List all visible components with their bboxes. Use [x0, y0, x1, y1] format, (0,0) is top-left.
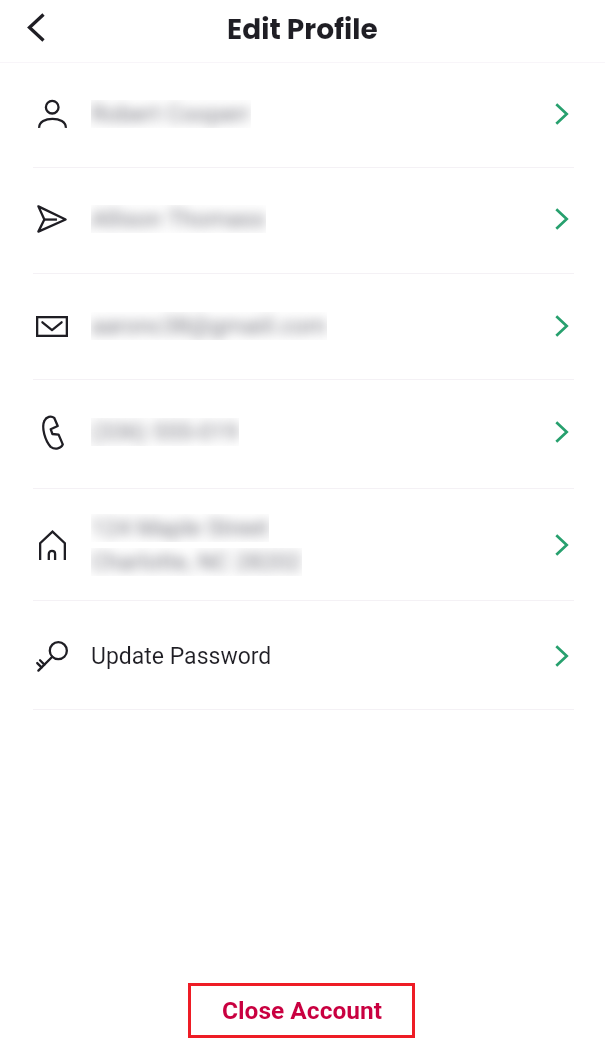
- staticText: aaronc38@gmaiil.com: [91, 312, 327, 340]
- staticText: 124 Maple Street: [91, 514, 269, 542]
- staticText: Close Account: [222, 996, 382, 1025]
- button[interactable]: Robert Cooperr: [0, 64, 605, 164]
- staticText: Robert Cooperr: [91, 100, 251, 128]
- button[interactable]: 124 Maple Street: [0, 495, 605, 595]
- button[interactable]: Allison Thomass: [0, 169, 605, 269]
- staticText: Allison Thomass: [91, 205, 266, 233]
- staticText: Charlotte, NC 28202: [91, 548, 302, 576]
- button[interactable]: aaronc38@gmaiil.com: [0, 276, 605, 376]
- button[interactable]: Back: [13, 4, 59, 50]
- button[interactable]: Update Password: [0, 606, 605, 706]
- staticText: (336) 555-019: [91, 418, 239, 446]
- button[interactable]: (336) 555-019: [0, 382, 605, 482]
- staticText: Edit Profile: [227, 10, 378, 49]
- button[interactable]: Close Account: [188, 983, 415, 1038]
- staticText: Update Password: [91, 643, 272, 670]
